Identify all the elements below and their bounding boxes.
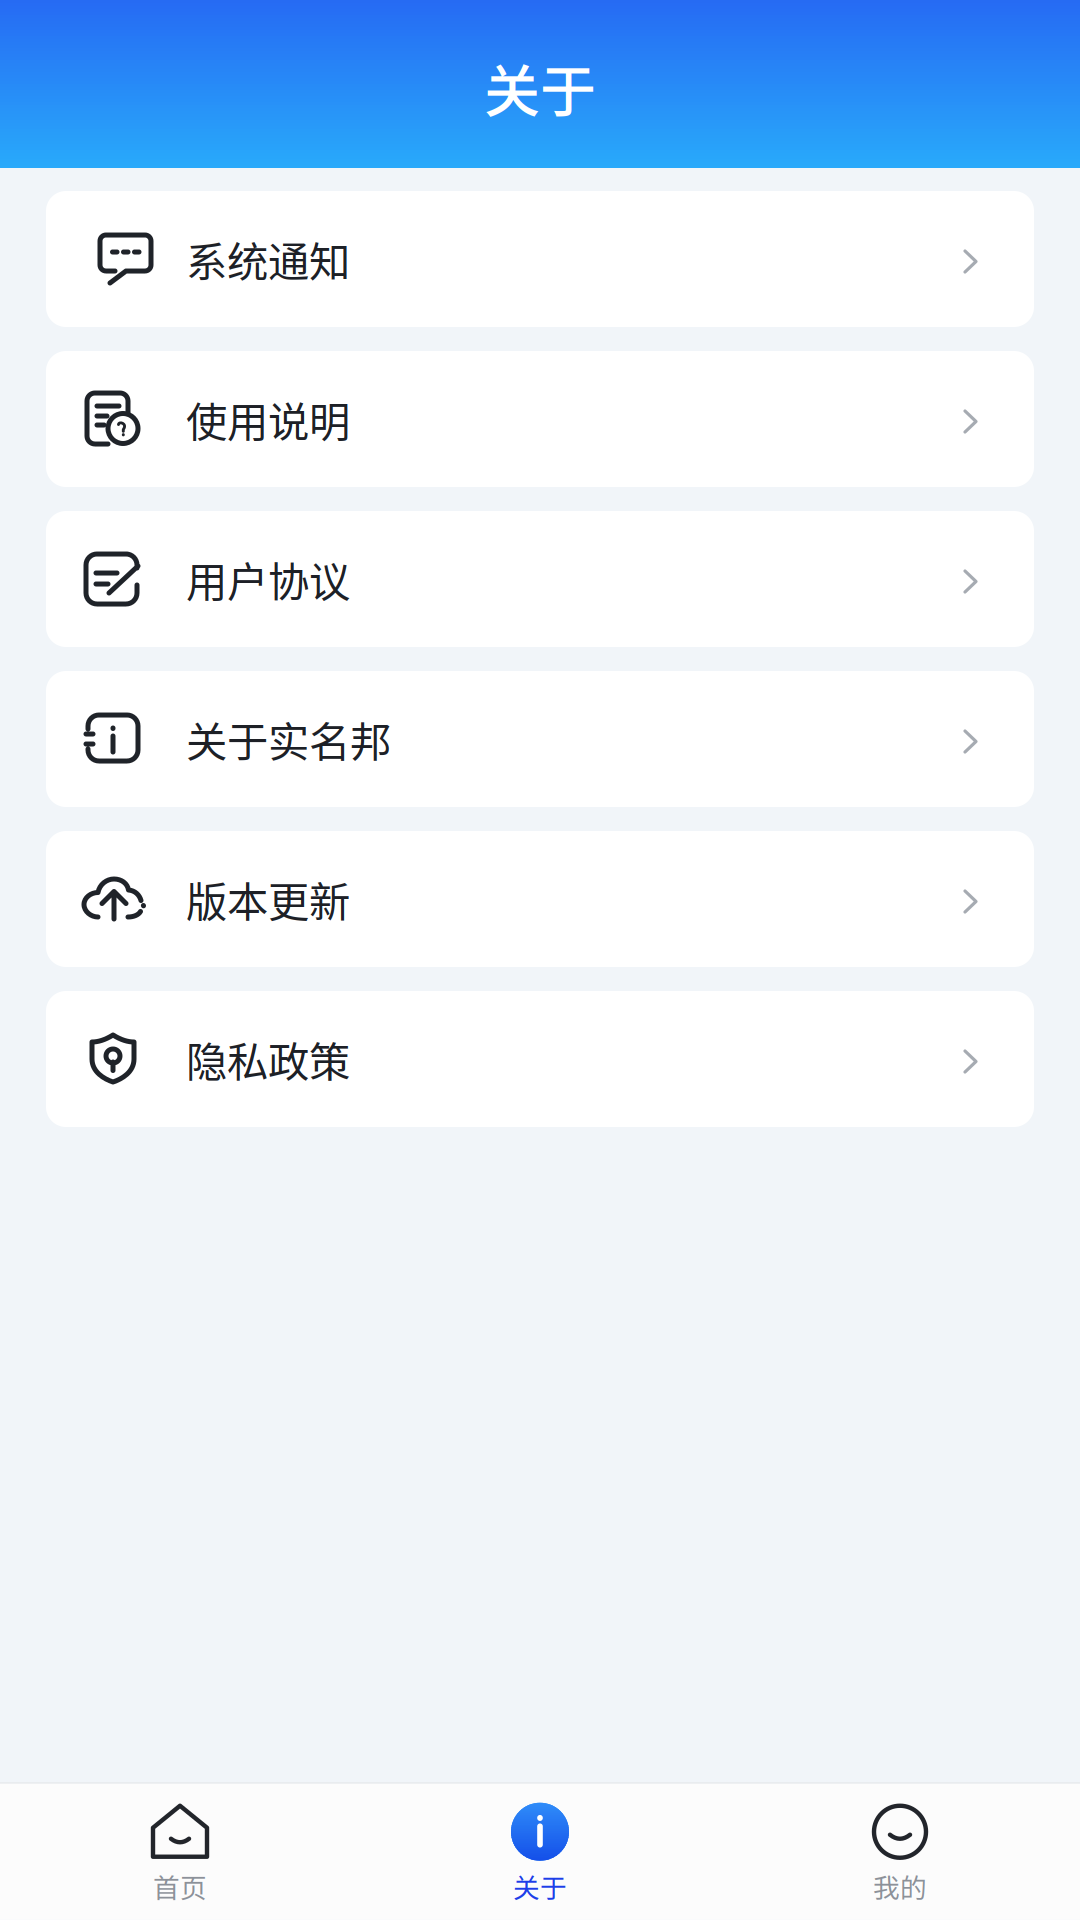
button[interactable]: 隐私政策	[46, 991, 1034, 1127]
staticText: 系统通知	[186, 229, 350, 289]
button[interactable]: 首页	[0, 1784, 360, 1920]
staticText: 关于实名邦	[186, 709, 391, 769]
staticText: 首页	[153, 1867, 207, 1905]
button[interactable]: 系统通知	[46, 191, 1034, 327]
button[interactable]: 用户协议	[46, 511, 1034, 647]
button[interactable]: 版本更新	[46, 831, 1034, 967]
button[interactable]: 我的	[720, 1784, 1080, 1920]
staticText: 隐私政策	[186, 1029, 350, 1089]
staticText: 关于	[513, 1867, 567, 1905]
button[interactable]: 关于	[360, 1784, 720, 1920]
staticText: 我的	[873, 1867, 927, 1905]
staticText: 使用说明	[186, 389, 350, 449]
button[interactable]: 关于实名邦	[46, 671, 1034, 807]
staticText: 版本更新	[186, 869, 350, 929]
staticText: 关于	[484, 46, 596, 128]
button[interactable]: 使用说明	[46, 351, 1034, 487]
staticText: 用户协议	[186, 549, 350, 609]
